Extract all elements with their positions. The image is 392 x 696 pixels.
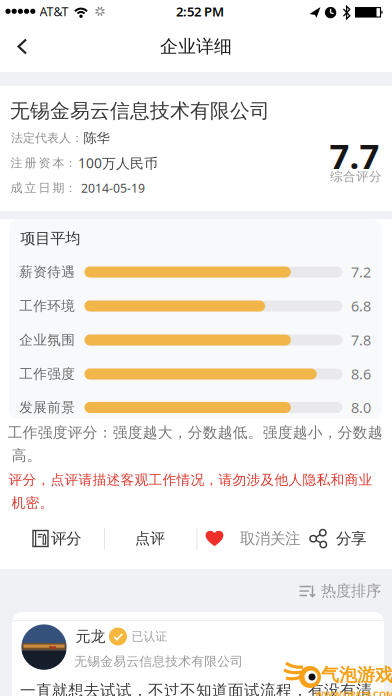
staticText: 注 册 资 本： bbox=[11, 155, 77, 170]
staticText: 评分 bbox=[51, 529, 81, 548]
staticText: 已认证 bbox=[131, 629, 167, 644]
button[interactable]: 点评 bbox=[135, 529, 165, 548]
button[interactable]: 热度排序 bbox=[299, 581, 381, 600]
staticText: WWW.QP828.COM bbox=[315, 688, 392, 696]
staticText: 分享 bbox=[336, 529, 366, 548]
staticText: 无锡金易云信息技术有限公司 bbox=[10, 99, 270, 123]
staticText: 点评 bbox=[135, 529, 165, 548]
staticText: 2:52 PM bbox=[176, 3, 224, 20]
button[interactable]: 分享 bbox=[310, 529, 366, 548]
staticText: 企业氛围 bbox=[19, 331, 75, 348]
staticText: 一直就想去试试，不过不知道面试流程，有没有清 bbox=[20, 681, 372, 696]
button[interactable]: 查看点评 bbox=[12, 612, 384, 696]
staticText: AT&T bbox=[39, 3, 68, 20]
staticText: 机密。 bbox=[12, 494, 54, 512]
staticText: 工作环境 bbox=[19, 297, 75, 314]
staticText: 法定代表人： bbox=[11, 130, 83, 145]
staticText: 气泡游戏网 bbox=[321, 664, 392, 686]
staticText: 无锡金易云信息技术有限公司 bbox=[74, 653, 243, 669]
staticText: 7.8 bbox=[351, 330, 371, 350]
staticText: 发展前景 bbox=[19, 399, 75, 416]
staticText: 薪资待遇 bbox=[19, 263, 75, 280]
button[interactable]: Back bbox=[9, 30, 43, 63]
staticText: 企业详细 bbox=[160, 35, 232, 58]
staticText: 100万人民币 bbox=[78, 154, 158, 172]
staticText: 综合评分 bbox=[330, 169, 382, 184]
staticText: 7.7 bbox=[329, 132, 379, 179]
staticText: 工作强度 bbox=[19, 365, 75, 382]
staticText: 8.0 bbox=[351, 398, 371, 417]
button[interactable]: 取消关注 bbox=[205, 529, 300, 548]
staticText: 高。 bbox=[12, 446, 42, 465]
staticText: 7.2 bbox=[351, 262, 371, 282]
staticText: 热度排序 bbox=[321, 581, 381, 600]
staticText: 2014-05-19 bbox=[81, 180, 145, 196]
staticText: 6.8 bbox=[351, 296, 371, 316]
staticText: 元龙 bbox=[75, 627, 105, 646]
staticText: 评分，点评请描述客观工作情况，请勿涉及他人隐私和商业 bbox=[8, 471, 372, 489]
staticText: 8.6 bbox=[351, 364, 371, 384]
staticText: 项目平均 bbox=[20, 229, 80, 248]
staticText: 陈华 bbox=[83, 129, 109, 146]
button[interactable]: 评分 bbox=[32, 529, 81, 548]
staticText: 工作强度评分：强度越大，分数越低。强度越小，分数越 bbox=[8, 423, 383, 442]
staticText: 成 立 日 期： bbox=[11, 180, 77, 195]
staticText: 取消关注 bbox=[240, 529, 300, 548]
